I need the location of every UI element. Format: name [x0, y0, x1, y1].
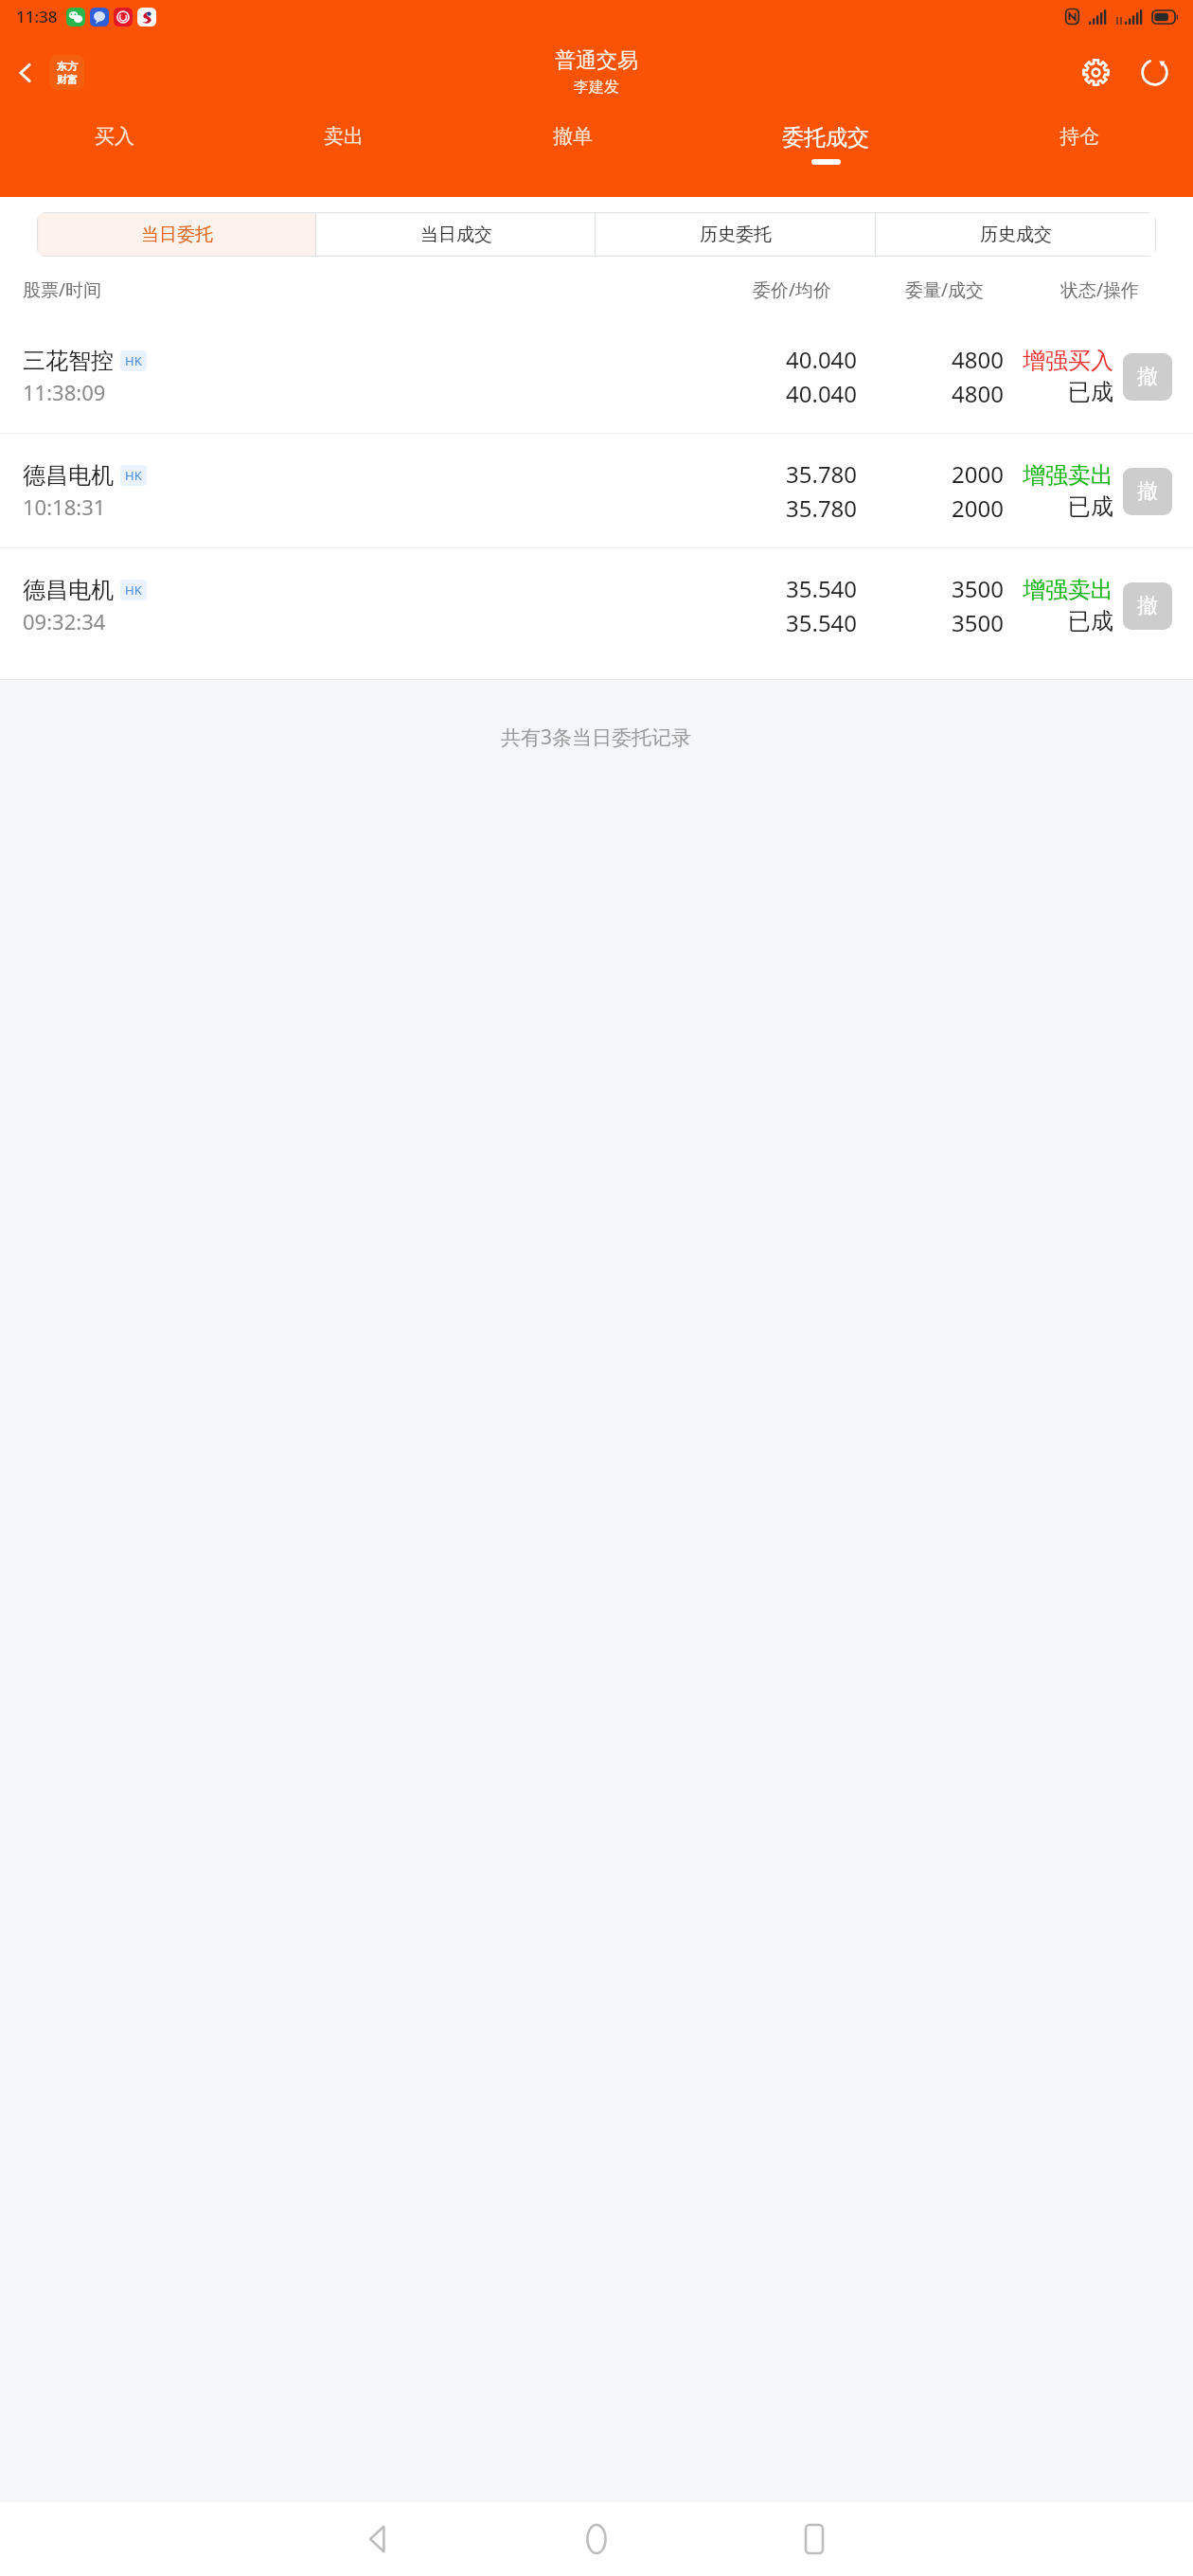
staticText: 增强卖出: [1023, 461, 1113, 490]
staticText: 卖出: [324, 124, 364, 149]
staticText: 李建发: [574, 78, 619, 97]
staticText: 增强卖出: [1023, 576, 1113, 604]
button[interactable]: 德昌电机: [0, 548, 1193, 662]
button[interactable]: 最近任务: [743, 2502, 885, 2576]
staticText: 东方: [57, 60, 78, 73]
staticText: 2000: [952, 492, 1004, 524]
staticText: 11:38:09: [23, 378, 106, 406]
button[interactable]: 历史委托: [596, 212, 876, 257]
staticText: HK: [125, 352, 142, 369]
button[interactable]: 撤单: [458, 112, 686, 197]
staticText: 撤: [1137, 478, 1158, 505]
staticText: 35.780: [786, 458, 858, 490]
staticText: 状态/操作: [1060, 277, 1140, 302]
button[interactable]: 撤: [1123, 582, 1172, 630]
button[interactable]: 德昌电机: [0, 434, 1193, 547]
staticText: 持仓: [1059, 124, 1099, 149]
staticText: 撤: [1137, 364, 1158, 390]
button[interactable]: 持仓: [965, 112, 1193, 197]
button[interactable]: 返回 东方财富: [8, 49, 90, 96]
button[interactable]: 主页: [525, 2502, 668, 2576]
staticText: 买入: [95, 124, 134, 149]
staticText: 委量/成交: [905, 277, 985, 302]
button[interactable]: 刷新: [1132, 50, 1176, 94]
staticText: 已成: [1068, 492, 1113, 521]
button[interactable]: 委托成交: [686, 112, 965, 197]
staticText: 4800: [952, 344, 1004, 375]
staticText: 35.540: [786, 607, 858, 638]
staticText: 当日成交: [420, 224, 492, 246]
staticText: 35.780: [786, 492, 858, 524]
staticText: 普通交易: [555, 47, 638, 74]
staticText: HK: [125, 581, 142, 599]
staticText: 11:38: [16, 6, 58, 27]
staticText: 德昌电机: [23, 461, 114, 490]
staticText: 增强买入: [1023, 347, 1113, 375]
staticText: 4800: [952, 378, 1004, 409]
button[interactable]: 卖出: [229, 112, 458, 197]
button[interactable]: 历史成交: [876, 212, 1156, 257]
staticText: 09:32:34: [23, 607, 106, 635]
staticText: 财富: [57, 73, 78, 86]
staticText: 历史委托: [700, 224, 772, 246]
staticText: 已成: [1068, 378, 1113, 406]
button[interactable]: 当日成交: [316, 212, 596, 257]
staticText: 三花智控: [23, 347, 114, 375]
staticText: 共有3条当日委托记录: [501, 724, 692, 751]
button[interactable]: 撤: [1123, 468, 1172, 515]
staticText: 撤: [1137, 593, 1158, 619]
staticText: 35.540: [786, 573, 858, 604]
button[interactable]: 返回: [308, 2502, 450, 2576]
staticText: 历史成交: [980, 224, 1052, 246]
staticText: 德昌电机: [23, 576, 114, 604]
staticText: 2000: [952, 458, 1004, 490]
staticText: 撤单: [553, 124, 593, 149]
staticText: 委价/均价: [753, 277, 832, 302]
staticText: HK: [125, 467, 142, 484]
staticText: 40.040: [786, 378, 858, 409]
staticText: 3500: [952, 573, 1004, 604]
staticText: 已成: [1068, 607, 1113, 635]
button[interactable]: 三花智控: [0, 319, 1193, 433]
button[interactable]: 设置: [1074, 50, 1117, 94]
staticText: 委托成交: [782, 124, 869, 152]
staticText: 40.040: [786, 344, 858, 375]
staticText: 股票/时间: [23, 277, 102, 302]
staticText: 3500: [952, 607, 1004, 638]
button[interactable]: 当日委托: [37, 212, 316, 257]
button[interactable]: 撤: [1123, 353, 1172, 401]
staticText: 当日委托: [141, 224, 213, 246]
button[interactable]: 买入: [0, 112, 229, 197]
staticText: 10:18:31: [23, 492, 106, 521]
